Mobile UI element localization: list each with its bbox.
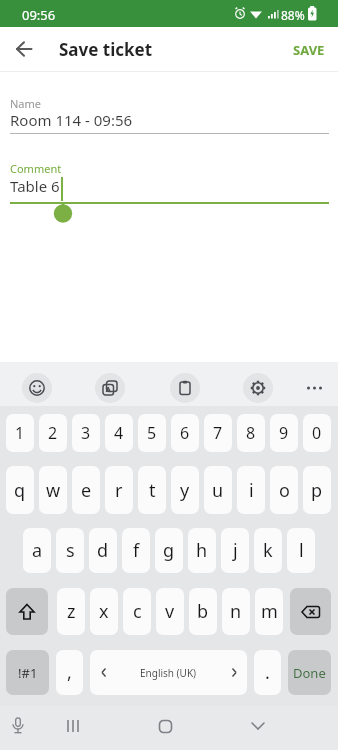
button[interactable] — [153, 714, 177, 738]
button[interactable] — [22, 373, 52, 403]
staticText: q — [14, 478, 26, 503]
staticText: 09:56 — [22, 6, 56, 24]
button[interactable] — [95, 373, 125, 403]
button[interactable]: r — [105, 466, 133, 514]
staticText: x — [99, 599, 109, 624]
button[interactable]: u — [204, 466, 232, 514]
button[interactable]: o — [270, 466, 298, 514]
staticText: u — [212, 478, 224, 503]
staticText: Done — [293, 664, 326, 682]
button[interactable]: y — [171, 466, 199, 514]
staticText: Table 6 — [10, 176, 60, 196]
staticText: j — [233, 538, 238, 563]
staticText: 3 — [81, 422, 91, 444]
staticText: 1 — [15, 422, 25, 444]
button[interactable]: v — [156, 588, 184, 635]
button[interactable]: h — [188, 528, 216, 573]
button[interactable]: t — [138, 466, 166, 514]
button[interactable]: , — [56, 650, 83, 695]
staticText: e — [81, 478, 92, 503]
button[interactable]: 8 — [237, 414, 265, 452]
staticText: m — [261, 599, 278, 624]
staticText: c — [133, 599, 142, 624]
staticText: 4 — [114, 422, 124, 444]
button[interactable]: g — [155, 528, 183, 573]
staticText: English (UK) — [140, 666, 197, 680]
staticText: s — [66, 538, 75, 563]
staticText: g — [163, 538, 175, 563]
button[interactable]: z — [57, 588, 85, 635]
button[interactable]: SAVE — [306, 41, 338, 59]
button[interactable] — [6, 31, 42, 67]
button[interactable] — [243, 373, 273, 403]
button[interactable]: w — [39, 466, 67, 514]
button[interactable]: 2 — [39, 414, 67, 452]
button[interactable]: 6 — [171, 414, 199, 452]
staticText: !#1 — [18, 664, 38, 682]
button[interactable]: i — [237, 466, 265, 514]
button[interactable]: 7 — [204, 414, 232, 452]
button[interactable]: j — [221, 528, 249, 573]
staticText: v — [165, 599, 175, 624]
staticText: z — [67, 599, 76, 624]
button[interactable]: m — [255, 588, 283, 635]
staticText: i — [249, 478, 254, 503]
button[interactable]: 0 — [303, 414, 331, 452]
staticText: r — [115, 478, 123, 503]
button[interactable]: !#1 — [6, 650, 49, 695]
staticText: t — [149, 478, 156, 503]
button[interactable]: s — [56, 528, 84, 573]
button[interactable] — [61, 714, 85, 738]
button[interactable]: e — [72, 466, 100, 514]
staticText: Save ticket — [59, 38, 153, 61]
button[interactable]: 1 — [6, 414, 34, 452]
staticText: Comment — [10, 161, 62, 176]
staticText: 6 — [180, 422, 190, 444]
button[interactable] — [246, 714, 270, 738]
staticText: 2 — [48, 422, 58, 444]
staticText: p — [311, 478, 323, 503]
button[interactable]: f — [122, 528, 150, 573]
button[interactable] — [6, 714, 30, 738]
button[interactable]: x — [90, 588, 118, 635]
button[interactable]: k — [254, 528, 282, 573]
staticText: Name — [10, 96, 42, 111]
staticText: 7 — [213, 422, 223, 444]
staticText: a — [32, 538, 43, 563]
staticText: o — [279, 478, 290, 503]
staticText: f — [133, 538, 140, 563]
staticText: b — [197, 599, 209, 624]
button[interactable] — [170, 373, 200, 403]
button[interactable]: 9 — [270, 414, 298, 452]
button[interactable]: p — [303, 466, 331, 514]
staticText: k — [263, 538, 273, 563]
button[interactable] — [6, 588, 48, 635]
button[interactable]: 5 — [138, 414, 166, 452]
button[interactable]: Done — [288, 650, 331, 695]
button[interactable]: n — [222, 588, 250, 635]
button[interactable]: b — [189, 588, 217, 635]
staticText: 0 — [312, 422, 322, 444]
staticText: h — [196, 538, 208, 563]
staticText: Room 114 - 09:56 — [10, 110, 133, 130]
staticText: 8 — [246, 422, 256, 444]
staticText: l — [299, 538, 304, 563]
button[interactable]: q — [6, 466, 34, 514]
staticText: . — [265, 660, 270, 685]
staticText: , — [67, 660, 72, 685]
button[interactable]: d — [89, 528, 117, 573]
button[interactable]: 4 — [105, 414, 133, 452]
button[interactable]: c — [123, 588, 151, 635]
staticText: 88% — [281, 7, 305, 23]
button[interactable]: English (UK) — [90, 650, 247, 695]
button[interactable]: l — [287, 528, 315, 573]
button[interactable]: . — [254, 650, 281, 695]
staticText: 9 — [279, 422, 289, 444]
button[interactable]: 3 — [72, 414, 100, 452]
staticText: w — [46, 478, 61, 503]
staticText: SAVE — [293, 41, 325, 59]
button[interactable] — [290, 588, 331, 635]
button[interactable]: a — [23, 528, 51, 573]
staticText: n — [230, 599, 242, 624]
staticText: d — [97, 538, 109, 563]
